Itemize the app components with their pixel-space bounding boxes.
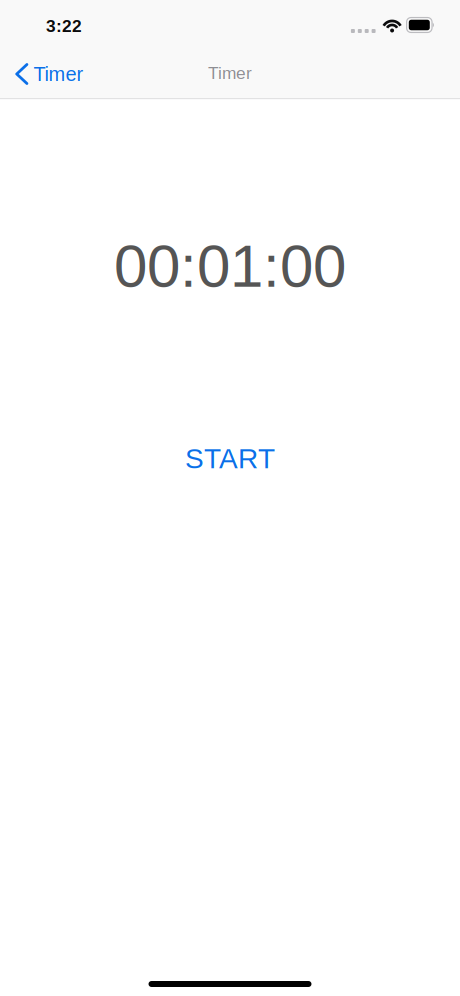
staticText: START <box>185 443 275 474</box>
staticText: Timer <box>208 63 252 83</box>
button[interactable]: Timer <box>0 53 94 92</box>
button[interactable]: START <box>160 435 300 481</box>
staticText: 3:22 <box>46 16 82 36</box>
staticText: Timer <box>34 63 84 85</box>
staticText: 00:01:00 <box>114 232 346 299</box>
